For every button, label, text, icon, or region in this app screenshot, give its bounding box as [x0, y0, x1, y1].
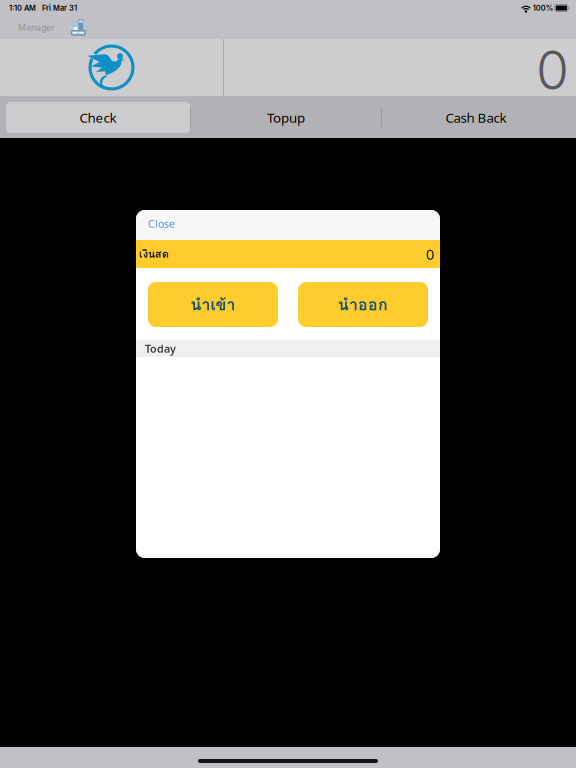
staticText: 0	[536, 38, 569, 102]
button[interactable]: Manager	[0, 16, 60, 39]
button[interactable]: Home	[0, 39, 223, 97]
staticText: Check	[79, 109, 116, 126]
staticText: นำเข้า	[190, 292, 235, 317]
button[interactable]: Total	[224, 39, 576, 97]
staticText: Today	[145, 341, 176, 356]
button[interactable]: Check	[6, 102, 190, 133]
staticText: เงินสด	[139, 246, 169, 262]
staticText: Manager	[18, 22, 54, 33]
staticText: 100%	[533, 3, 553, 12]
button[interactable]: Register	[60, 16, 95, 39]
button[interactable]: Cash Back	[382, 102, 570, 133]
staticText: Fri Mar 31	[42, 3, 77, 12]
button[interactable]: นำเข้า	[148, 282, 278, 327]
button[interactable]: Close	[136, 212, 187, 238]
staticText: Cash Back	[445, 109, 506, 126]
staticText: 0	[426, 244, 434, 264]
staticText: Topup	[267, 109, 305, 126]
staticText: 1:10 AM	[9, 3, 36, 12]
button[interactable]: นำออก	[298, 282, 428, 327]
staticText: นำออก	[338, 292, 388, 317]
staticText: Close	[148, 216, 175, 231]
button[interactable]: Topup	[191, 102, 381, 133]
